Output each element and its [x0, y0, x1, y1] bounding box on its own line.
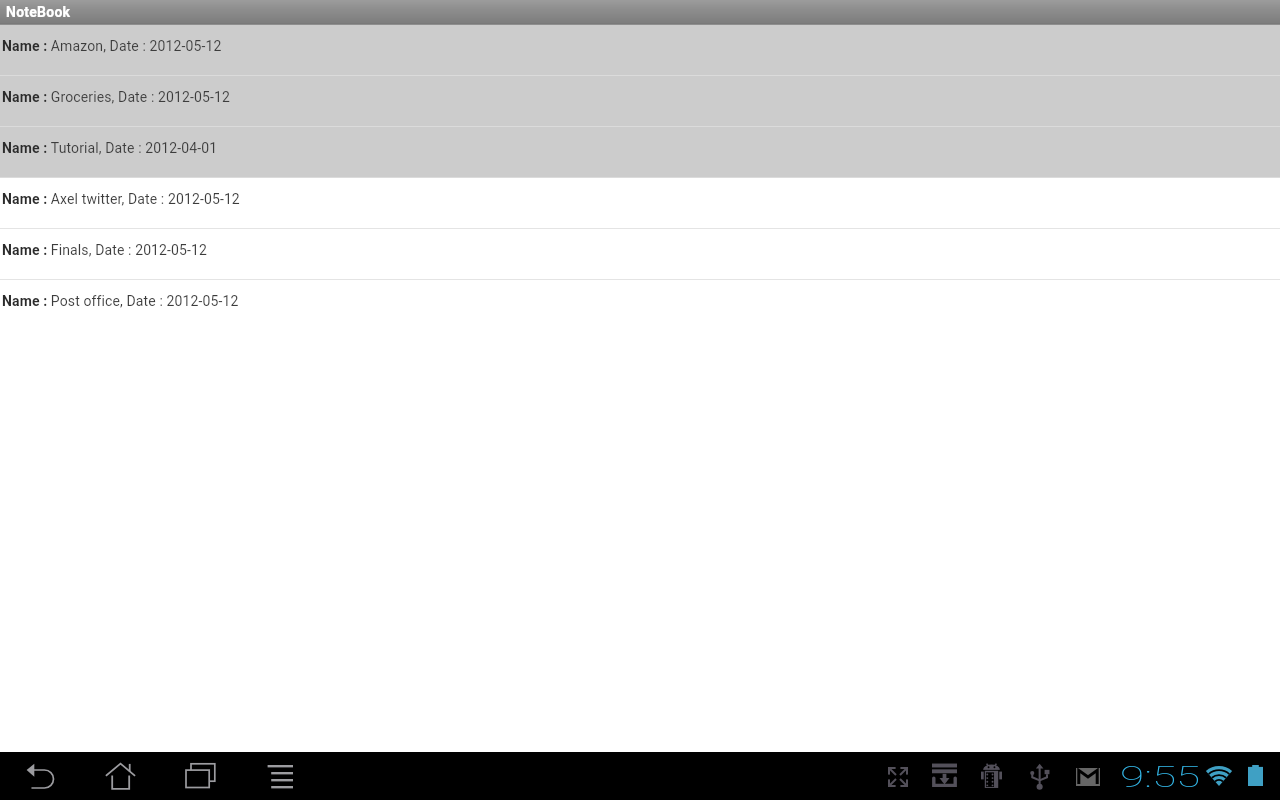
button[interactable]: Back [16, 752, 64, 800]
button[interactable]: Name : Post office, Date : 2012-05-12 [0, 280, 1280, 330]
staticText: NoteBook [6, 4, 71, 20]
staticText: Name : Post office, Date : 2012-05-12 [2, 293, 239, 309]
button[interactable]: Name : Tutorial, Date : 2012-04-01 [0, 127, 1280, 178]
button[interactable]: NoteBook [0, 0, 1280, 25]
button[interactable]: Recent apps [176, 752, 224, 800]
other: Wi-Fi [1206, 766, 1232, 786]
other: USB connected [1031, 763, 1049, 791]
staticText: Name : Groceries, Date : 2012-05-12 [2, 89, 230, 105]
button[interactable]: Home [96, 752, 144, 800]
button[interactable]: Name : Amazon, Date : 2012-05-12 [0, 25, 1280, 76]
other: USB debugging [981, 763, 1002, 789]
staticText: Name : Tutorial, Date : 2012-04-01 [2, 140, 218, 156]
button[interactable]: Status and notifications [876, 752, 1280, 800]
other: New mail [1076, 768, 1100, 786]
other: Downloads [932, 763, 957, 790]
other: Full screen [888, 767, 908, 787]
button[interactable]: Name : Groceries, Date : 2012-05-12 [0, 76, 1280, 127]
button[interactable]: Name : Axel twitter, Date : 2012-05-12 [0, 178, 1280, 229]
staticText: Name : Finals, Date : 2012-05-12 [2, 242, 208, 258]
button[interactable]: Name : Finals, Date : 2012-05-12 [0, 229, 1280, 280]
staticText: 9:55 [1120, 759, 1201, 794]
staticText: Name : Axel twitter, Date : 2012-05-12 [2, 191, 240, 207]
staticText: Name : Amazon, Date : 2012-05-12 [2, 38, 222, 54]
other: Battery [1248, 765, 1263, 786]
button[interactable]: Menu [257, 752, 305, 800]
